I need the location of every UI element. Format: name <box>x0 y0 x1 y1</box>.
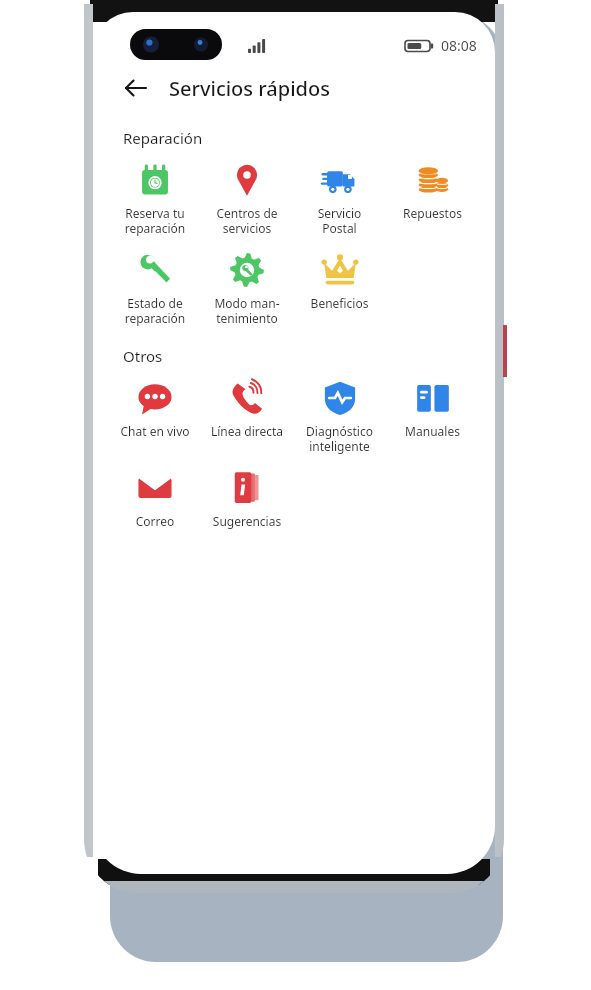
staticText: Correo <box>109 513 201 529</box>
staticText: Sugerencias <box>201 513 293 529</box>
staticText: Repuestos <box>386 205 479 221</box>
staticText: Servicio Postal <box>293 205 386 236</box>
button[interactable]: Back <box>119 71 153 105</box>
button[interactable]: Beneficios <box>293 250 386 313</box>
button[interactable]: Correo <box>109 468 201 531</box>
button[interactable]: Centros de servicios <box>201 160 293 238</box>
button[interactable]: Estado de reparación <box>109 250 201 328</box>
staticText: Reserva tu reparación <box>109 205 201 236</box>
button[interactable]: Repuestos <box>386 160 479 223</box>
staticText: Modo man- tenimiento <box>201 295 293 326</box>
staticText: Línea directa <box>201 423 293 439</box>
staticText: Chat en vivo <box>109 423 201 439</box>
staticText: Manuales <box>386 423 479 439</box>
button[interactable]: Reserva tu reparación <box>109 160 201 238</box>
staticText: Otros <box>123 346 163 366</box>
staticText: Centros de servicios <box>201 205 293 236</box>
staticText: 08:08 <box>441 36 477 55</box>
staticText: Reparación <box>123 128 203 148</box>
staticText: Diagnóstico inteligente <box>293 423 386 454</box>
button[interactable]: Manuales <box>386 378 479 441</box>
button[interactable]: Chat en vivo <box>109 378 201 441</box>
button[interactable]: Diagnóstico inteligente <box>293 378 386 456</box>
staticText: Beneficios <box>293 295 386 311</box>
button[interactable]: Servicio Postal <box>293 160 386 238</box>
button[interactable]: Modo man- tenimiento <box>201 250 293 328</box>
button[interactable]: Línea directa <box>201 378 293 441</box>
staticText: Servicios rápidos <box>169 75 330 102</box>
button[interactable]: Sugerencias <box>201 468 293 531</box>
staticText: Estado de reparación <box>109 295 201 326</box>
